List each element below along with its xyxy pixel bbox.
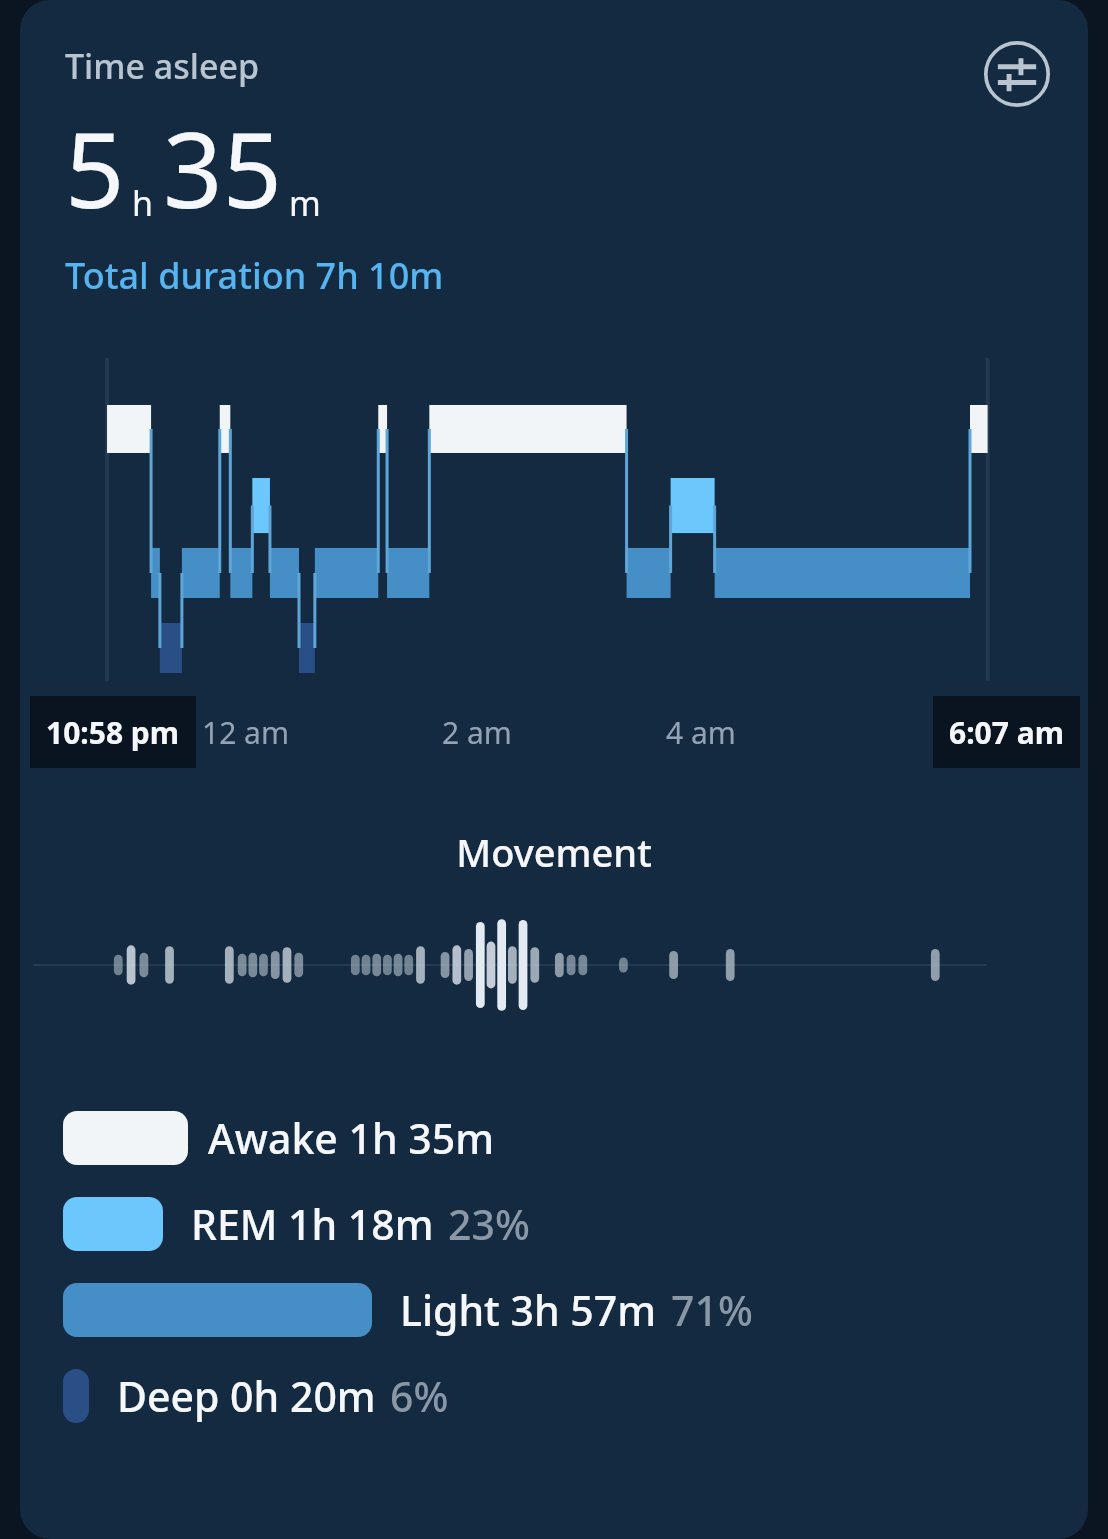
staticText: 6:07 am bbox=[949, 712, 1064, 752]
staticText: 23% bbox=[448, 1196, 530, 1252]
button[interactable]: Light 3h 57m bbox=[63, 1282, 753, 1338]
staticText: 35 bbox=[163, 97, 282, 239]
staticText: Movement bbox=[20, 826, 1088, 878]
staticText: 2 am bbox=[442, 712, 512, 753]
staticText: Deep 0h 20m bbox=[117, 1368, 376, 1424]
staticText: 4 am bbox=[666, 712, 736, 753]
staticText: Light 3h 57m bbox=[400, 1282, 657, 1338]
staticText: m bbox=[289, 180, 321, 226]
staticText: Time asleep bbox=[65, 43, 260, 89]
staticText: 12 am bbox=[202, 712, 289, 753]
staticText: h bbox=[132, 180, 154, 226]
staticText: 5 bbox=[65, 97, 125, 239]
button[interactable]: Sleep settings bbox=[981, 38, 1053, 110]
button[interactable]: Deep 0h 20m bbox=[63, 1368, 449, 1424]
staticText: 10:58 pm bbox=[46, 712, 180, 752]
staticText: REM 1h 18m bbox=[191, 1196, 434, 1252]
staticText: 6% bbox=[390, 1368, 449, 1424]
staticText: Total duration 7h 10m bbox=[65, 251, 444, 300]
staticText: Awake 1h 35m bbox=[208, 1110, 495, 1166]
staticText: 71% bbox=[671, 1282, 753, 1338]
button[interactable]: REM 1h 18m bbox=[63, 1196, 530, 1252]
button[interactable]: Awake 1h 35m bbox=[63, 1110, 495, 1166]
